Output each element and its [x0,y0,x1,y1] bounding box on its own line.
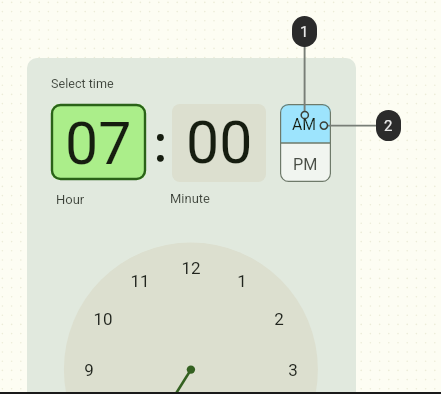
staticText: AM [292,115,317,134]
button[interactable]: 07 [51,104,146,180]
button[interactable]: 1 [227,270,257,292]
staticText: 10 [93,309,113,329]
button[interactable]: 2 [264,308,294,330]
button[interactable]: PM [280,143,331,182]
staticText: Select time [51,76,114,91]
button[interactable]: AM [280,104,331,143]
staticText: Hour [56,192,85,207]
button[interactable]: 00 [172,104,266,182]
button[interactable]: 11 [125,270,155,292]
staticText: Minute [170,191,211,206]
button[interactable]: 3 [278,359,308,381]
button[interactable]: 9 [74,359,104,381]
staticText: 00 [186,108,253,177]
button[interactable]: 10 [88,308,118,330]
button[interactable]: Annotation 1 [292,16,317,47]
staticText: 2 [384,117,393,135]
staticText: 3 [288,360,298,380]
staticText: 07 [65,109,132,178]
staticText: PM [293,155,318,174]
staticText: 1 [237,271,247,291]
staticText: 12 [181,258,201,278]
staticText: 2 [274,309,284,329]
staticText: 11 [130,271,150,291]
button[interactable]: Annotation 2 [376,110,401,141]
staticText: 9 [84,360,94,380]
staticText: 1 [300,23,309,41]
button[interactable]: 12 [176,257,206,279]
